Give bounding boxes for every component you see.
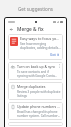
staticText: Merge duplicates — [17, 84, 46, 89]
button[interactable]: Update phone numbers from Brazil — [8, 102, 63, 120]
staticText: Brazil has changed its phone number syst… — [17, 110, 61, 118]
staticText: Easy ways to focus your contacts — [20, 36, 61, 41]
button[interactable]: Turn on back up & sync — [8, 62, 63, 80]
staticText: See how merging duplicates, adding detai… — [20, 42, 61, 50]
staticText: To save contacts and if syncing with Goo… — [17, 70, 57, 78]
staticText: Merge & fix — [17, 26, 44, 33]
staticText: Got it — [50, 52, 59, 57]
staticText: Review 3 people with duplicate listings — [17, 90, 61, 98]
button[interactable]: More options — [57, 64, 61, 70]
button[interactable]: Back — [8, 26, 15, 33]
staticText: Turn on back up & sync — [17, 64, 56, 69]
button[interactable]: Keep contacts up to date — [8, 122, 63, 126]
button[interactable]: Got it — [48, 51, 61, 58]
button[interactable]: Merge duplicates — [8, 82, 63, 100]
button[interactable]: Easy ways to focus your contacts — [8, 34, 63, 60]
staticText: Get suggestions — [18, 6, 53, 12]
staticText: Update phone numbers from Brazil — [17, 104, 61, 109]
